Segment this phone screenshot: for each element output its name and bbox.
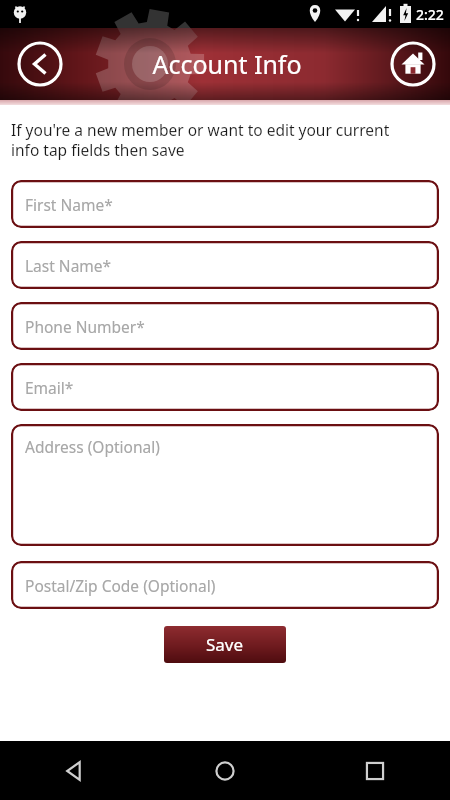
button[interactable]: Postal/Zip Code (Optional) bbox=[11, 561, 439, 609]
button[interactable]: Home bbox=[150, 741, 300, 800]
staticText: Postal/Zip Code (Optional) bbox=[25, 575, 216, 596]
button[interactable]: Save bbox=[164, 626, 286, 663]
staticText: Phone Number* bbox=[25, 316, 145, 337]
button[interactable]: Phone Number* bbox=[11, 302, 439, 350]
button[interactable]: First Name* bbox=[11, 180, 439, 228]
button[interactable]: Back bbox=[0, 741, 150, 800]
staticText: If you're a new member or want to edit y… bbox=[11, 119, 440, 161]
button[interactable]: Home bbox=[390, 41, 436, 87]
button[interactable]: Last Name* bbox=[11, 241, 439, 289]
staticText: Last Name* bbox=[25, 255, 112, 276]
staticText: 2:22 bbox=[416, 5, 444, 24]
button[interactable]: Email* bbox=[11, 363, 439, 411]
button[interactable]: Recent apps bbox=[300, 741, 450, 800]
staticText: Save bbox=[206, 633, 244, 656]
staticText: Account Info bbox=[152, 47, 302, 81]
staticText: First Name* bbox=[25, 194, 113, 215]
staticText: Email* bbox=[25, 377, 74, 398]
staticText: Address (Optional) bbox=[25, 436, 160, 457]
button[interactable]: Back bbox=[17, 41, 63, 87]
button[interactable]: Address (Optional) bbox=[11, 424, 439, 546]
